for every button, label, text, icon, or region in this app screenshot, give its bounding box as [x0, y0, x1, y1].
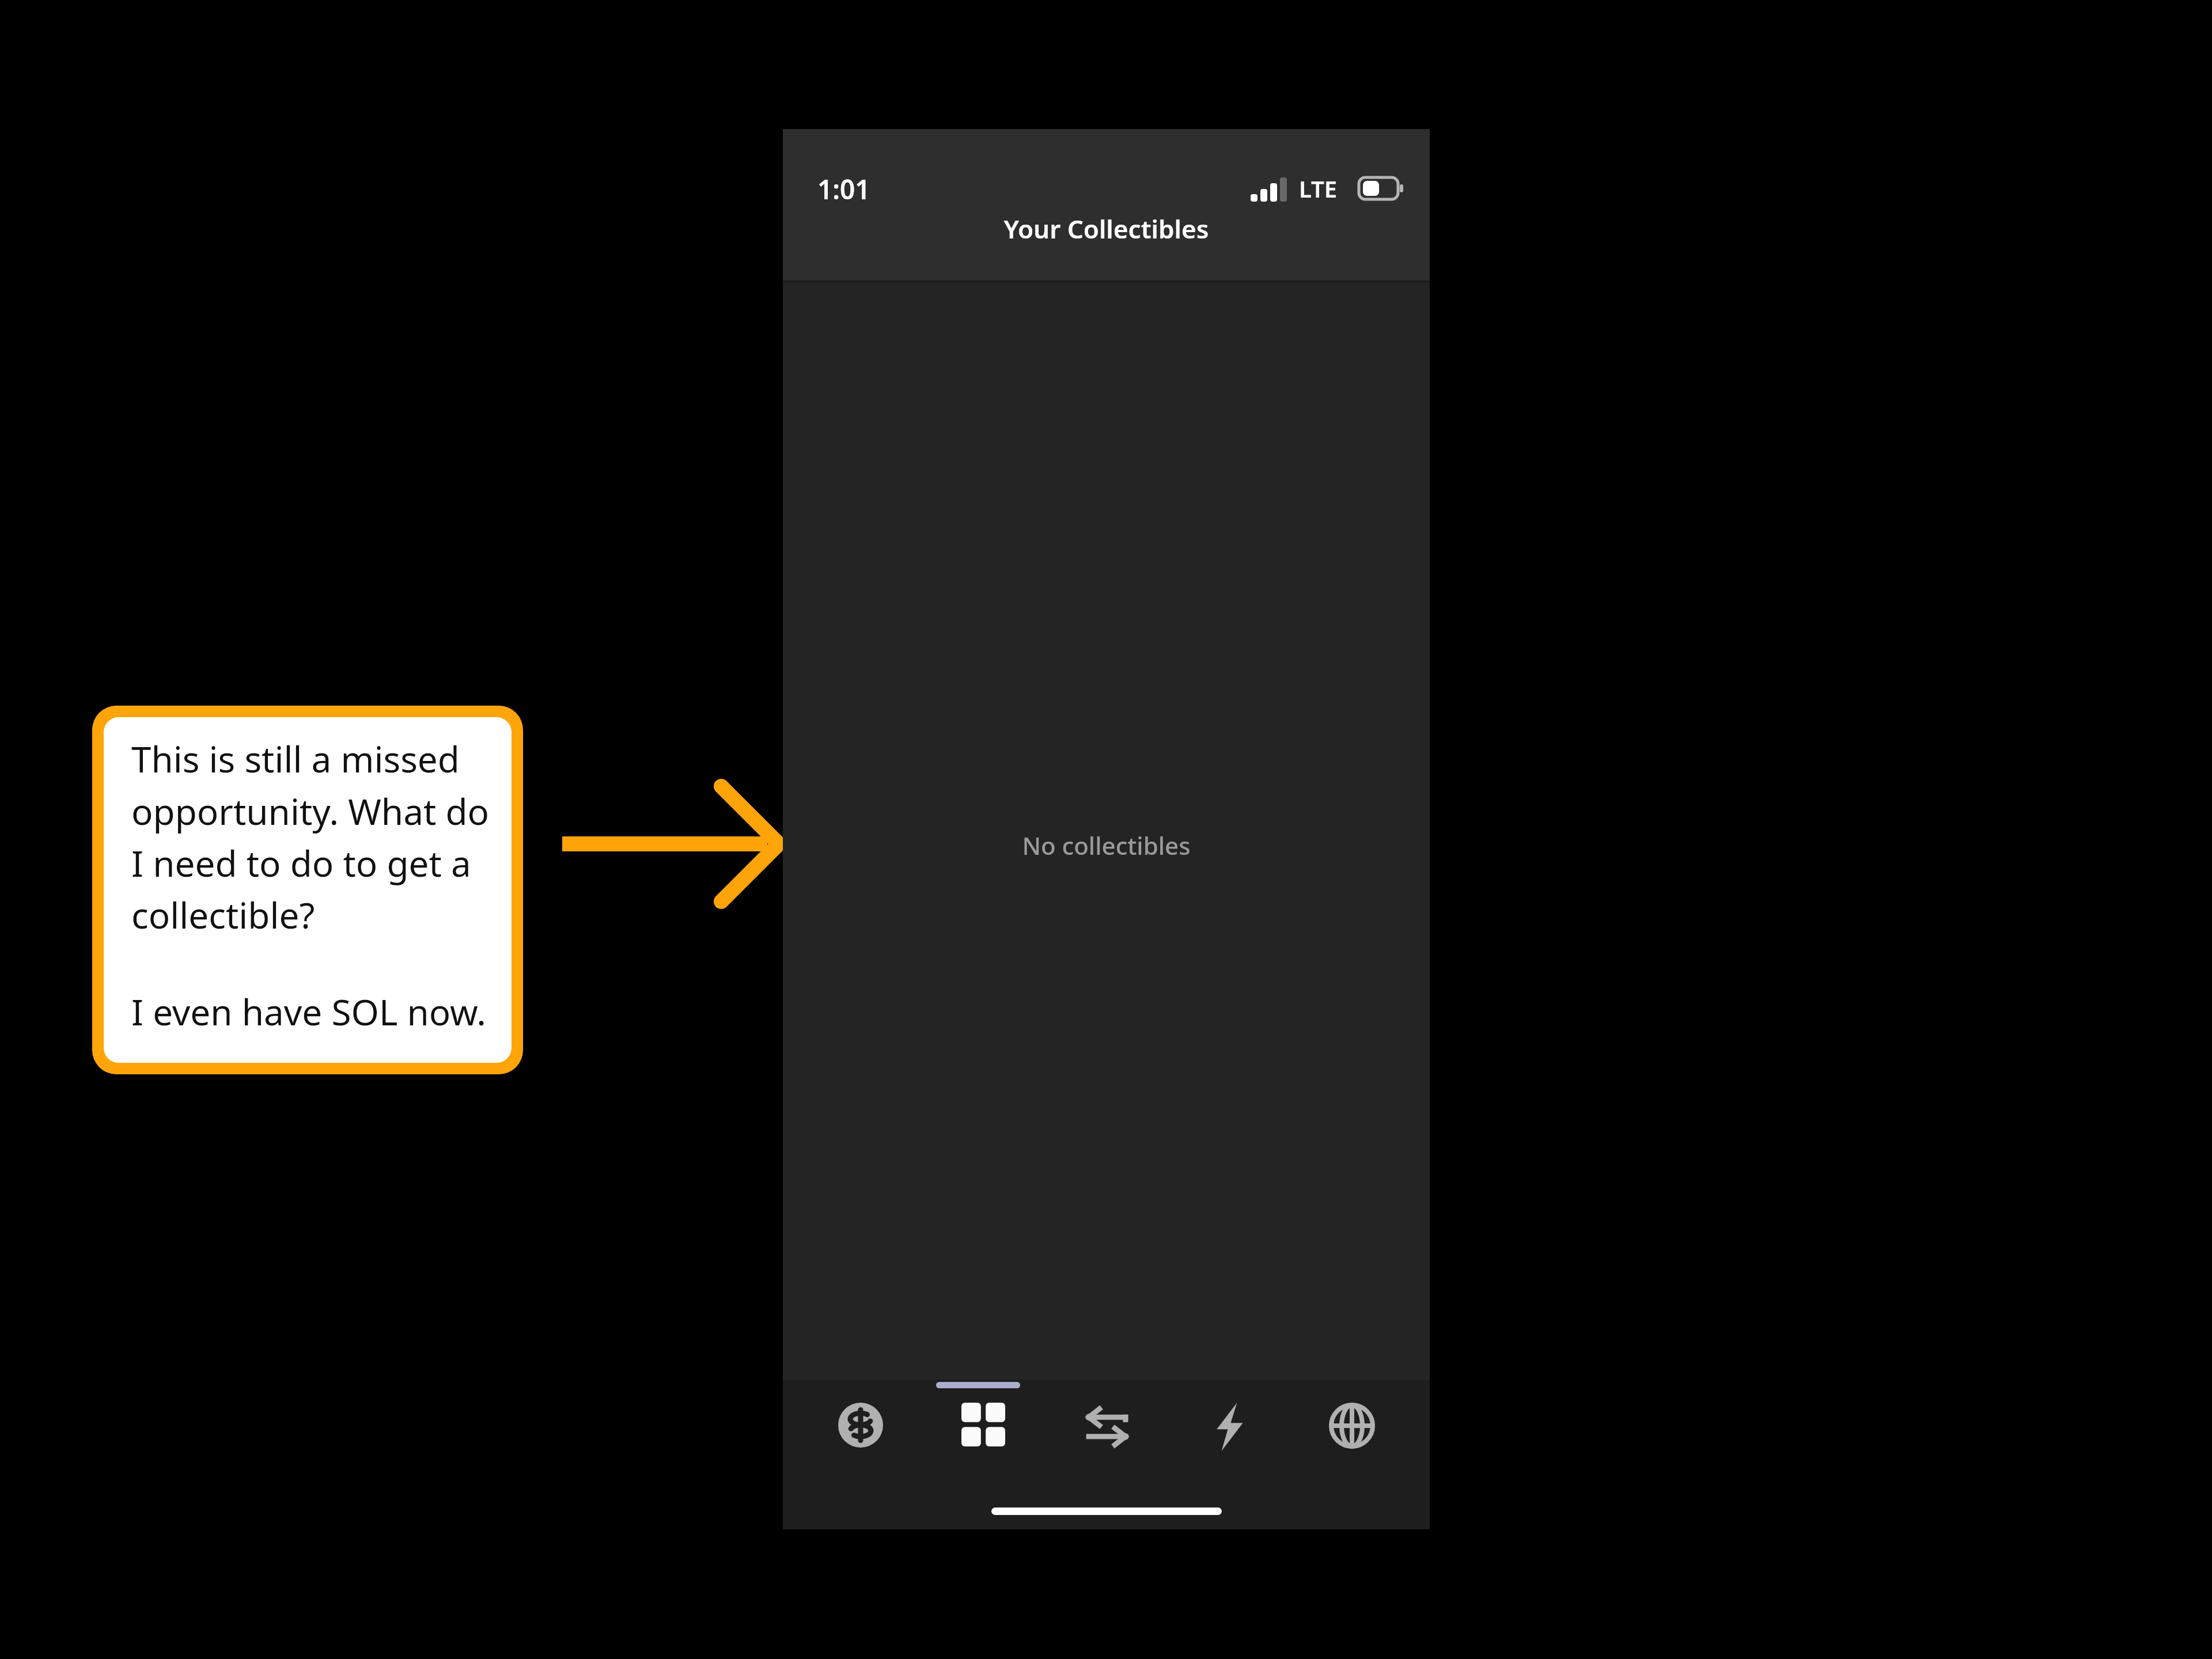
staticText: LTE [1299, 173, 1338, 204]
button[interactable]: Browser [1309, 1403, 1395, 1483]
button[interactable]: Collectibles [940, 1403, 1027, 1483]
button[interactable]: This is still a missed opportunity. What… [104, 717, 512, 1063]
staticText: 1:01 [817, 171, 870, 207]
button[interactable]: Activity [1186, 1403, 1272, 1483]
staticText: No collectibles [783, 829, 1430, 862]
staticText: Your Collectibles [783, 211, 1430, 246]
staticText: This is still a missed opportunity. What… [131, 734, 490, 939]
staticText: I even have SOL now. [131, 987, 486, 1036]
button[interactable]: Swap [1064, 1403, 1150, 1483]
button[interactable]: Balance [817, 1403, 904, 1483]
